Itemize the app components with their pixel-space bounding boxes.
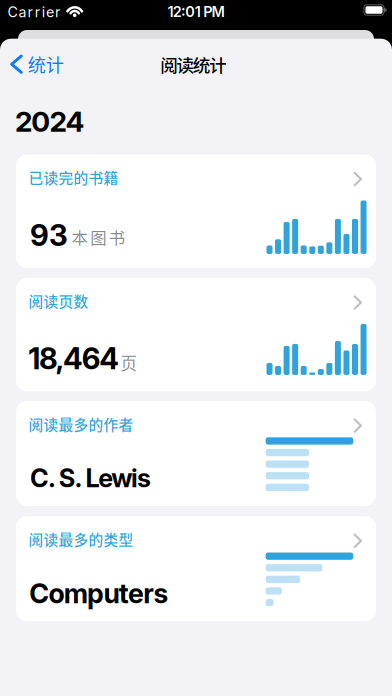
button[interactable]: 阅读最多的类型	[16, 516, 376, 621]
staticText: 阅读最多的类型	[28, 529, 133, 550]
staticText: C. S. Lewis	[30, 463, 151, 493]
staticText: 阅读统计	[160, 52, 227, 77]
staticText: 阅读最多的作者	[28, 413, 133, 435]
staticText: Carrier	[7, 3, 60, 21]
staticText: 18,464	[28, 341, 119, 376]
button[interactable]: 阅读页数	[16, 278, 376, 391]
staticText: 阅读页数	[28, 290, 88, 311]
staticText: 页	[120, 351, 137, 374]
staticText: 本图书	[72, 225, 125, 249]
button[interactable]: 阅读最多的作者	[16, 401, 376, 506]
button[interactable]: 已读完的书籍	[16, 154, 376, 268]
staticText: 12:01 PM	[167, 3, 225, 21]
staticText: Computers	[29, 577, 169, 610]
button[interactable]: 统计	[1, 42, 72, 86]
staticText: 2024	[15, 104, 85, 139]
staticText: 已读完的书籍	[28, 167, 118, 188]
staticText: 统计	[28, 51, 64, 77]
staticText: 93	[30, 217, 68, 253]
